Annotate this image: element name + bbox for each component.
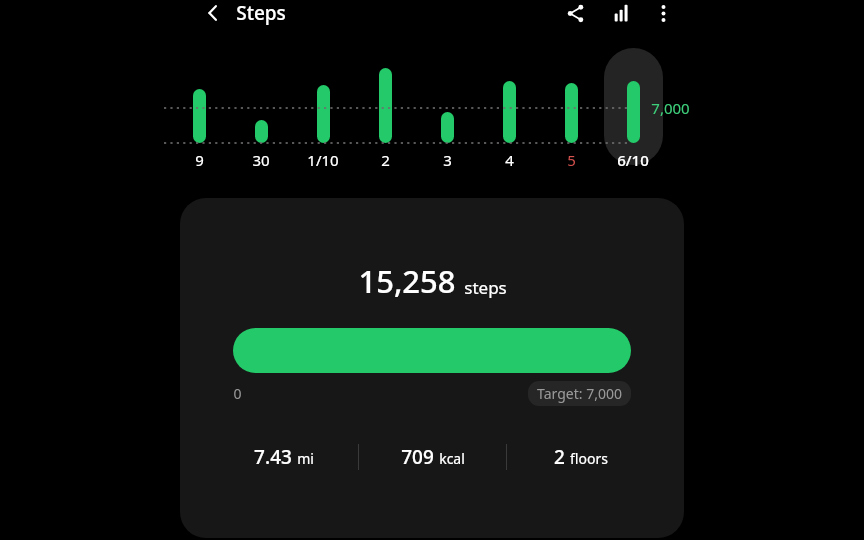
staticText: 709 bbox=[401, 444, 434, 470]
button[interactable]: More options bbox=[646, 0, 680, 26]
staticText: 9 bbox=[195, 150, 204, 170]
button[interactable]: 7.43 bbox=[210, 444, 358, 470]
button[interactable]: 2 bbox=[354, 48, 416, 180]
button[interactable]: Back bbox=[198, 0, 228, 26]
staticText: floors bbox=[570, 449, 608, 468]
staticText: 1/10 bbox=[307, 150, 339, 170]
staticText: 2 bbox=[381, 150, 390, 170]
staticText: 7.43 bbox=[254, 444, 292, 470]
staticText: 5 bbox=[567, 150, 576, 170]
staticText: steps bbox=[464, 276, 507, 299]
staticText: 15,258 bbox=[358, 260, 456, 302]
staticText: 0 bbox=[233, 384, 242, 403]
button[interactable]: 4 bbox=[478, 48, 540, 180]
staticText: 7,000 bbox=[651, 98, 690, 118]
staticText: 6/10 bbox=[617, 150, 649, 170]
staticText: kcal bbox=[439, 449, 465, 468]
button[interactable]: 9 bbox=[168, 48, 230, 180]
staticText: Steps bbox=[236, 0, 286, 26]
button[interactable]: 15,258 bbox=[180, 198, 684, 538]
staticText: 2 bbox=[554, 444, 565, 470]
button[interactable]: 2 bbox=[507, 444, 654, 470]
staticText: mi bbox=[297, 449, 314, 468]
staticText: 3 bbox=[443, 150, 452, 170]
button[interactable]: 6/10 bbox=[602, 48, 664, 180]
staticText: Target: 7,000 bbox=[537, 384, 622, 403]
button[interactable]: Share bbox=[558, 0, 592, 26]
button[interactable]: 30 bbox=[230, 48, 292, 180]
button[interactable]: 1/10 bbox=[292, 48, 354, 180]
button[interactable]: Chart bbox=[604, 0, 638, 26]
staticText: 4 bbox=[505, 150, 514, 170]
button[interactable]: 3 bbox=[416, 48, 478, 180]
button[interactable]: 5 bbox=[540, 48, 602, 180]
staticText: 30 bbox=[252, 150, 270, 170]
button[interactable]: 709 bbox=[359, 444, 506, 470]
